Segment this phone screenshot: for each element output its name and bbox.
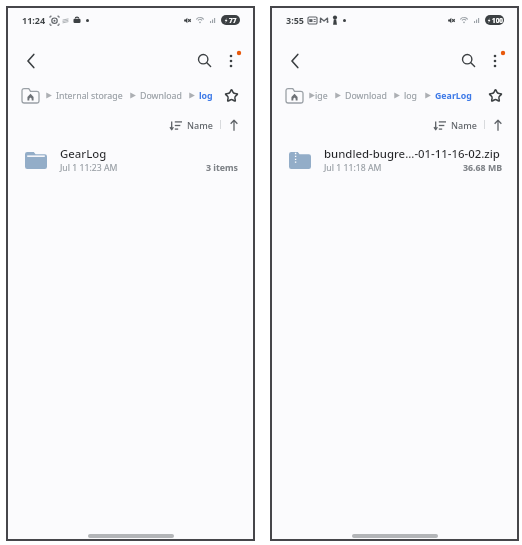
staticText: log — [404, 90, 418, 102]
button[interactable]: More options — [216, 46, 246, 76]
staticText: bundled-bugre...-01-11-16-02.zip — [324, 146, 500, 162]
staticText: 100 — [492, 16, 503, 25]
staticText: Name — [451, 119, 477, 131]
staticText: ige — [315, 90, 328, 102]
staticText: 36.68 MB — [463, 162, 503, 174]
button[interactable]: Back — [16, 46, 46, 76]
staticText: 11:24 — [22, 14, 46, 26]
staticText: 3 items — [206, 162, 239, 174]
staticText: GearLog — [60, 146, 107, 162]
button[interactable]: Sort ascending — [225, 116, 243, 134]
button[interactable]: Name — [169, 117, 214, 133]
staticText: Internal storage — [56, 90, 123, 102]
button[interactable]: Favorite — [487, 87, 504, 104]
button[interactable]: Download — [140, 90, 182, 102]
button[interactable]: Home — [286, 88, 303, 103]
staticText: Jul 1 11:23 AM — [60, 162, 118, 174]
button[interactable]: Search — [457, 49, 480, 72]
button[interactable]: GearLog — [435, 90, 472, 102]
button[interactable]: GearLog — [6, 139, 255, 181]
staticText: Jul 1 11:18 AM — [324, 162, 382, 174]
staticText: log — [199, 90, 213, 102]
staticText: Name — [187, 119, 213, 131]
button[interactable]: Home — [22, 88, 39, 103]
staticText: Download — [345, 90, 387, 102]
button[interactable]: ige — [315, 90, 328, 102]
button[interactable]: Name — [433, 117, 478, 133]
button[interactable]: Internal storage — [56, 90, 123, 102]
button[interactable]: Favorite — [223, 87, 240, 104]
button[interactable]: Search — [193, 49, 216, 72]
staticText: GearLog — [435, 90, 472, 102]
button[interactable]: bundled-bugre...-01-11-16-02.zip — [270, 139, 519, 181]
button[interactable]: log — [404, 90, 418, 102]
button[interactable]: Back — [280, 46, 310, 76]
staticText: 77 — [229, 16, 237, 25]
staticText: 3:55 — [286, 14, 304, 26]
button[interactable]: More options — [480, 46, 510, 76]
staticText: Download — [140, 90, 182, 102]
button[interactable]: log — [199, 90, 213, 102]
button[interactable]: Sort ascending — [489, 116, 507, 134]
button[interactable]: Download — [345, 90, 387, 102]
